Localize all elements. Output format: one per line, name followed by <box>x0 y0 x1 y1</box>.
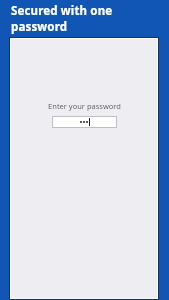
staticText: Enter your password <box>48 101 121 111</box>
staticText: Secured with one password <box>11 3 169 35</box>
button[interactable]: Password entry field <box>52 116 117 128</box>
